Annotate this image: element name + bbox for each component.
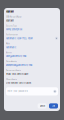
staticText: anonymous@university.edu bbox=[6, 64, 32, 66]
staticText: CA certificate bbox=[6, 78, 17, 80]
staticText: Join bbox=[52, 105, 55, 107]
staticText: Authentication bbox=[6, 34, 18, 36]
staticText: SSID (Network Name) bbox=[6, 16, 22, 18]
staticText: Mode bbox=[6, 43, 10, 45]
button[interactable]: Join bbox=[49, 103, 58, 108]
staticText: Trust this certificate bbox=[6, 73, 28, 75]
staticText: WPA2 Enterprise bbox=[6, 28, 22, 31]
button[interactable]: More information bbox=[55, 37, 58, 40]
staticText: eduroam bbox=[6, 10, 14, 13]
staticText: Identity bbox=[6, 52, 12, 53]
staticText: Cancel bbox=[40, 105, 45, 107]
staticText: eduroam bbox=[6, 19, 14, 22]
staticText: Enter your password bbox=[8, 90, 28, 92]
staticText: Security Type bbox=[6, 25, 17, 27]
staticText: Automatic bbox=[6, 46, 16, 49]
staticText: Outer identity bbox=[6, 60, 17, 62]
staticText: user@university.edu bbox=[6, 55, 26, 58]
button[interactable]: Cancel bbox=[38, 103, 47, 108]
staticText: Use system certificates bbox=[6, 82, 31, 84]
staticText: Automatic (EAP-TTLS, PEAP) bbox=[6, 37, 33, 40]
staticText: Server certificate bbox=[6, 69, 21, 71]
